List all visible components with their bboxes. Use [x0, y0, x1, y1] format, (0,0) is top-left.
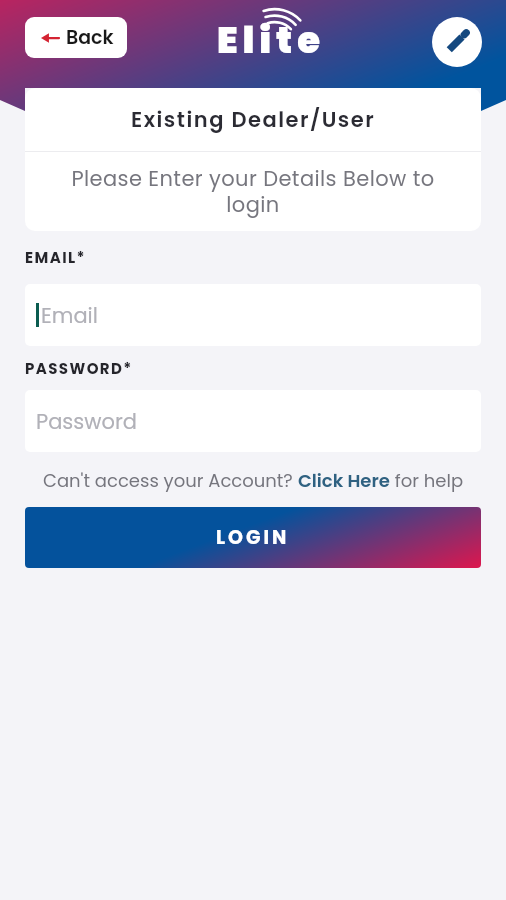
button[interactable]: Click Here — [298, 468, 390, 493]
staticText: PASSWORD* — [25, 358, 133, 379]
staticText: Password — [36, 407, 137, 436]
staticText: Existing Dealer/User — [131, 105, 376, 134]
button[interactable]: Edit — [432, 17, 482, 67]
staticText: EMAIL* — [25, 247, 86, 268]
staticText: Elite — [217, 14, 325, 66]
staticText: Please Enter your Details Below to login — [55, 164, 451, 219]
staticText: for help — [390, 468, 464, 493]
button[interactable]: Email — [25, 284, 481, 346]
button[interactable]: LOGIN — [25, 507, 481, 568]
staticText: Email — [41, 301, 98, 330]
staticText: Back — [66, 24, 114, 51]
button[interactable]: Back — [25, 17, 127, 58]
staticText: LOGIN — [216, 524, 290, 551]
button[interactable]: Password — [25, 390, 481, 452]
staticText: Can't access your Account? — [43, 468, 298, 493]
